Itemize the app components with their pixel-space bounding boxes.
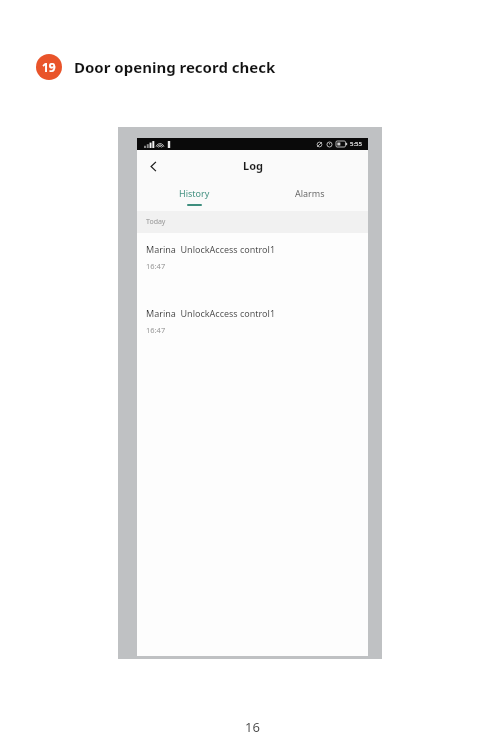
button[interactable]: Marina UnlockAccess control1 <box>137 297 368 339</box>
staticText: Alarms <box>295 187 325 199</box>
staticText: 19 <box>42 59 56 75</box>
staticText: 16 <box>245 718 260 736</box>
staticText: Today <box>146 217 166 227</box>
staticText: Door opening record check <box>74 57 276 77</box>
button[interactable]: Alarms <box>252 181 368 211</box>
button[interactable]: Back <box>141 154 165 178</box>
staticText: Marina UnlockAccess control1 <box>146 243 276 255</box>
staticText: Log <box>243 158 263 173</box>
staticText: 16:47 <box>146 261 166 271</box>
button[interactable]: History <box>137 181 252 211</box>
staticText: History <box>179 187 210 199</box>
staticText: Marina UnlockAccess control1 <box>146 307 276 319</box>
staticText: 16:47 <box>146 325 166 335</box>
staticText: 5:55 <box>350 140 362 148</box>
button[interactable]: Marina UnlockAccess control1 <box>137 233 368 275</box>
